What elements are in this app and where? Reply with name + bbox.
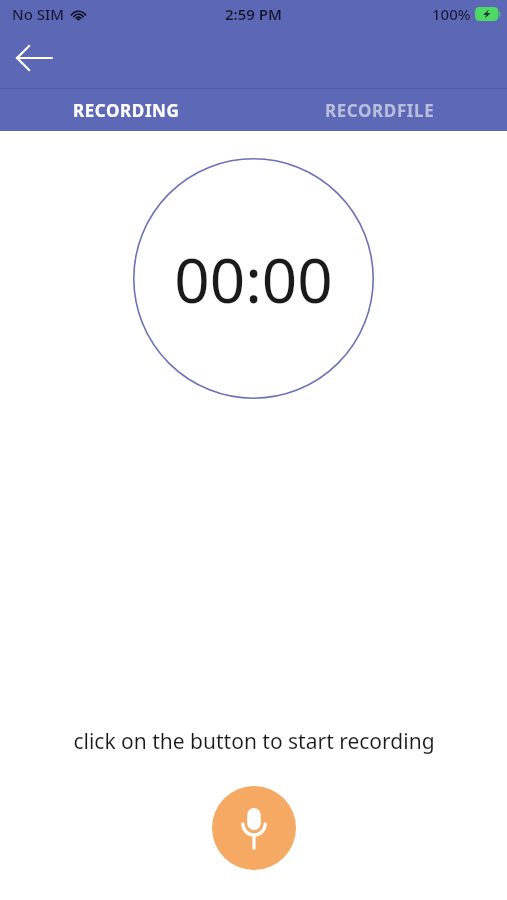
staticText: RECORDFILE [325,99,435,122]
button[interactable]: Start recording [212,786,296,870]
button[interactable]: RECORDFILE [253,89,507,131]
button[interactable]: RECORDING [0,89,253,131]
staticText: 00:00 [174,237,333,321]
staticText: RECORDING [73,99,180,122]
staticText: 2:59 PM [225,4,282,24]
staticText: No SIM [12,4,65,24]
button[interactable]: Back [10,34,58,82]
staticText: 100% [432,4,471,24]
staticText: click on the button to start recording [73,727,435,756]
